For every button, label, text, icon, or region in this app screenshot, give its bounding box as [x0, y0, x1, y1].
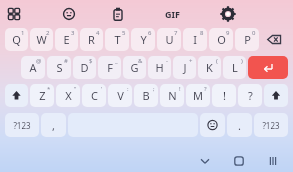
staticText: ?123	[262, 120, 280, 131]
staticText: -	[166, 57, 168, 65]
staticText: ?	[248, 88, 253, 103]
staticText: ?	[204, 85, 207, 93]
staticText: "	[74, 85, 77, 93]
staticText: .	[238, 118, 241, 133]
button[interactable]: Keyboard modes	[6, 6, 22, 22]
staticText: $	[89, 57, 93, 65]
button[interactable]: R	[80, 28, 103, 51]
staticText: 0	[252, 29, 256, 37]
button[interactable]: P	[235, 28, 259, 51]
button[interactable]: Emoji	[61, 6, 77, 22]
button[interactable]: O	[209, 28, 233, 51]
button[interactable]: Home	[231, 153, 247, 169]
button[interactable]: A	[21, 56, 45, 79]
button[interactable]: ?123	[5, 113, 39, 137]
button[interactable]: N	[160, 84, 184, 107]
staticText: U	[165, 32, 174, 47]
staticText: W	[36, 32, 47, 47]
staticText: 5	[122, 29, 126, 37]
button[interactable]: ?123	[254, 113, 288, 137]
staticText: !	[179, 85, 181, 93]
button[interactable]: Y	[131, 28, 155, 51]
button[interactable]: F	[98, 56, 121, 79]
staticText: S	[56, 60, 63, 75]
button[interactable]: J	[173, 56, 196, 79]
button[interactable]: !	[212, 84, 236, 107]
button[interactable]: C	[82, 84, 106, 107]
staticText: V	[117, 88, 124, 103]
button[interactable]: Backspace	[261, 28, 288, 51]
button[interactable]: H	[148, 56, 171, 79]
staticText: N	[168, 88, 177, 103]
button[interactable]: Enter	[248, 56, 288, 79]
staticText: GIF	[165, 8, 180, 20]
button[interactable]: Hide keyboard	[197, 153, 213, 169]
staticText: 4	[96, 29, 100, 37]
button[interactable]: Z	[30, 84, 54, 107]
staticText: R	[88, 32, 95, 47]
staticText: A	[29, 60, 37, 75]
staticText: K	[206, 60, 213, 75]
staticText: T	[114, 32, 121, 47]
button[interactable]: T	[105, 28, 129, 51]
staticText: G	[130, 60, 139, 75]
button[interactable]: W	[30, 28, 53, 51]
button[interactable]: G	[123, 56, 146, 79]
button[interactable]: Q	[5, 28, 28, 51]
button[interactable]: K	[198, 56, 221, 79]
staticText: 2	[46, 29, 50, 37]
button[interactable]: Recent apps	[265, 153, 281, 169]
staticText: :	[127, 85, 129, 93]
staticText: 3	[71, 29, 75, 37]
staticText: H	[155, 60, 164, 75]
button[interactable]: Shift	[5, 84, 28, 107]
button[interactable]: I	[183, 28, 207, 51]
staticText: I	[193, 32, 197, 47]
button[interactable]: X	[56, 84, 80, 107]
staticText: Q	[12, 32, 21, 47]
staticText: @	[36, 57, 42, 65]
staticText: 8	[200, 29, 204, 37]
button[interactable]: S	[47, 56, 71, 79]
button[interactable]: V	[108, 84, 132, 107]
staticText: '	[101, 85, 103, 93]
staticText: D	[80, 60, 89, 75]
staticText: ?123	[13, 120, 31, 131]
staticText: 1	[21, 29, 25, 37]
staticText: 9	[226, 29, 230, 37]
staticText: J	[183, 60, 187, 75]
staticText: P	[244, 32, 251, 47]
button[interactable]: GIF	[158, 6, 186, 22]
staticText: )	[241, 57, 243, 65]
button[interactable]: Settings	[220, 6, 236, 22]
staticText: !	[223, 88, 226, 103]
button[interactable]: U	[157, 28, 181, 51]
button[interactable]: Clipboard	[110, 6, 126, 22]
button[interactable]: ?	[238, 84, 262, 107]
staticText: Y	[140, 32, 147, 47]
staticText: E	[63, 32, 70, 47]
staticText: #	[64, 57, 68, 65]
staticText: Z	[39, 88, 46, 103]
staticText: &	[138, 57, 143, 65]
button[interactable]: L	[223, 56, 246, 79]
button[interactable]: D	[73, 56, 96, 79]
button[interactable]: E	[55, 28, 78, 51]
button[interactable]: M	[186, 84, 210, 107]
button[interactable]: Emoji	[200, 113, 225, 137]
staticText: ;	[153, 85, 155, 93]
button[interactable]: Shift	[264, 84, 288, 107]
staticText: ,	[52, 118, 55, 133]
button[interactable]: .	[227, 113, 252, 137]
staticText: L	[232, 60, 238, 75]
staticText: O	[217, 32, 226, 47]
button[interactable]: ,	[41, 113, 66, 137]
staticText: X	[65, 88, 72, 103]
button[interactable]: B	[134, 84, 158, 107]
staticText: (	[216, 57, 218, 65]
staticText: F	[107, 60, 113, 75]
staticText: M	[193, 88, 203, 103]
staticText: 6	[148, 29, 152, 37]
staticText: *	[47, 85, 51, 93]
